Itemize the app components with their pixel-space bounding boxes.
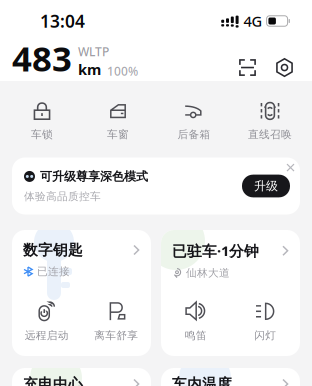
staticText: 100% [107, 63, 138, 79]
staticText: 已驻车·1分钟 [172, 241, 259, 260]
staticText: 体验高品质控车 [24, 190, 101, 203]
button[interactable]: 远程启动 [12, 300, 81, 342]
button[interactable]: Settings [271, 54, 298, 81]
staticText: 升级 [254, 179, 278, 193]
button[interactable]: 直线召唤 [232, 94, 308, 148]
staticText: 充电中心 [23, 375, 83, 386]
staticText: 鸣笛 [185, 329, 207, 342]
staticText: 车窗 [107, 128, 129, 141]
staticText: 直线召唤 [248, 128, 292, 141]
staticText: 4G [244, 11, 263, 31]
staticText: 离车舒享 [94, 329, 138, 342]
button[interactable]: 车内温度 [161, 368, 300, 386]
staticText: 可升级尊享深色模式 [40, 169, 148, 184]
staticText: 已连接 [37, 265, 70, 278]
button[interactable]: Close [281, 158, 300, 177]
staticText: 数字钥匙 [23, 241, 83, 259]
button[interactable]: 已驻车·1分钟 [161, 230, 300, 280]
button[interactable]: 车窗 [80, 94, 156, 148]
staticText: 后备箱 [177, 128, 210, 141]
staticText: 仙林大道 [186, 266, 230, 280]
staticText: 车锁 [31, 128, 53, 141]
button[interactable]: 数字钥匙 [12, 230, 151, 278]
staticText: 闪灯 [254, 329, 276, 342]
staticText: WLTP [78, 44, 109, 59]
button[interactable]: Scan [234, 54, 261, 81]
button[interactable]: 离车舒享 [81, 300, 151, 342]
staticText: 483 [12, 35, 72, 81]
button[interactable]: 车锁 [4, 94, 80, 148]
staticText: 13:04 [40, 9, 85, 32]
button[interactable]: 闪灯 [230, 300, 300, 342]
button[interactable]: 升级 [242, 175, 290, 197]
staticText: 远程启动 [25, 329, 69, 342]
button[interactable]: 充电中心 [12, 368, 151, 386]
staticText: 车内温度 [172, 375, 232, 386]
button[interactable]: 后备箱 [156, 94, 232, 148]
button[interactable]: 鸣笛 [161, 300, 230, 342]
staticText: km [78, 60, 101, 79]
